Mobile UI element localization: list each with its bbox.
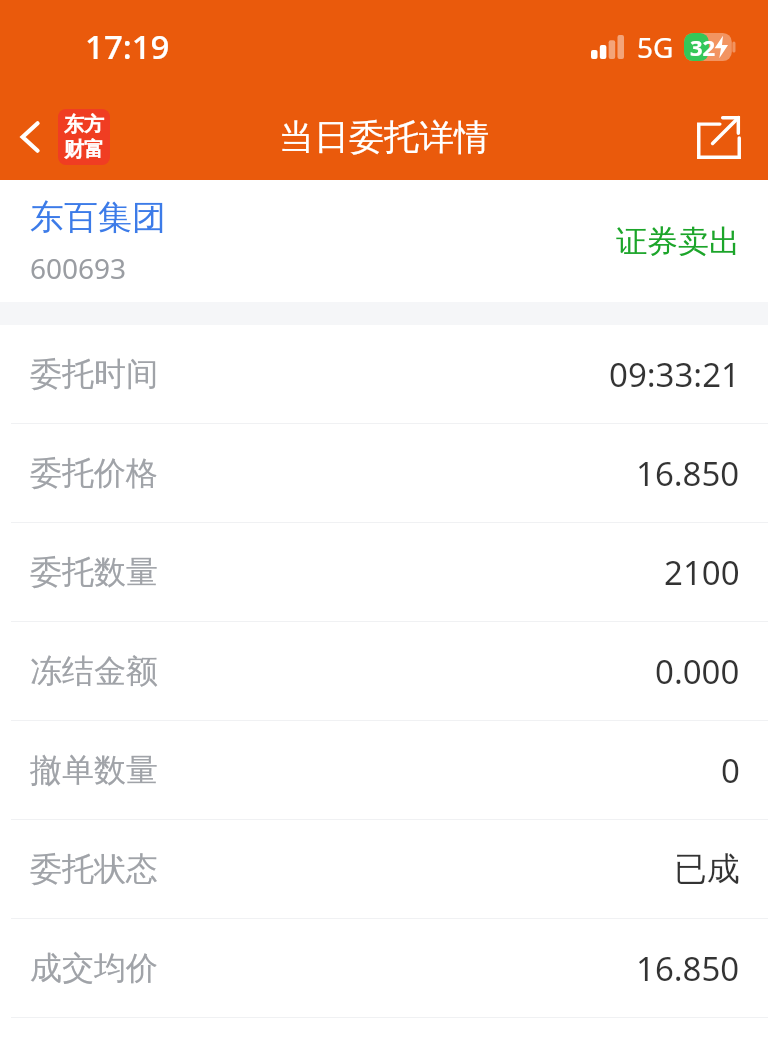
staticText: 成交均价 — [30, 948, 158, 988]
staticText: 东方 — [64, 112, 104, 137]
staticText: 财富 — [64, 137, 104, 162]
staticText: 东百集团 — [30, 196, 166, 239]
staticText: 委托数量 — [30, 552, 158, 592]
staticText: 5G — [637, 28, 674, 66]
button[interactable]: 委托数量 — [0, 523, 768, 621]
button[interactable]: 冻结金额 — [0, 622, 768, 720]
button[interactable]: 东百集团 — [0, 180, 768, 302]
staticText: 委托时间 — [30, 354, 158, 394]
staticText: 当日委托详情 — [279, 115, 489, 159]
staticText: 17:19 — [85, 24, 170, 69]
button[interactable]: 成交均价 — [0, 919, 768, 1017]
staticText: 16.850 — [636, 946, 740, 991]
staticText: 0.000 — [655, 649, 740, 694]
staticText: 2100 — [664, 550, 740, 595]
staticText: 证券卖出 — [616, 222, 740, 261]
staticText: 冻结金额 — [30, 651, 158, 691]
staticText: 已成 — [674, 848, 740, 890]
button[interactable]: Back — [0, 101, 122, 173]
staticText: 委托状态 — [30, 849, 158, 889]
staticText: 09:33:21 — [609, 352, 740, 397]
staticText: 600693 — [30, 249, 127, 287]
staticText: 0 — [721, 748, 740, 793]
staticText: 16.850 — [636, 451, 740, 496]
button[interactable]: Share — [670, 102, 768, 172]
button[interactable]: 撤单数量 — [0, 721, 768, 819]
button[interactable]: 委托价格 — [0, 424, 768, 522]
button[interactable]: 委托状态 — [0, 820, 768, 918]
button[interactable]: 委托时间 — [0, 325, 768, 423]
staticText: 委托价格 — [30, 453, 158, 493]
staticText: 32 — [690, 32, 716, 62]
staticText: 撤单数量 — [30, 750, 158, 790]
